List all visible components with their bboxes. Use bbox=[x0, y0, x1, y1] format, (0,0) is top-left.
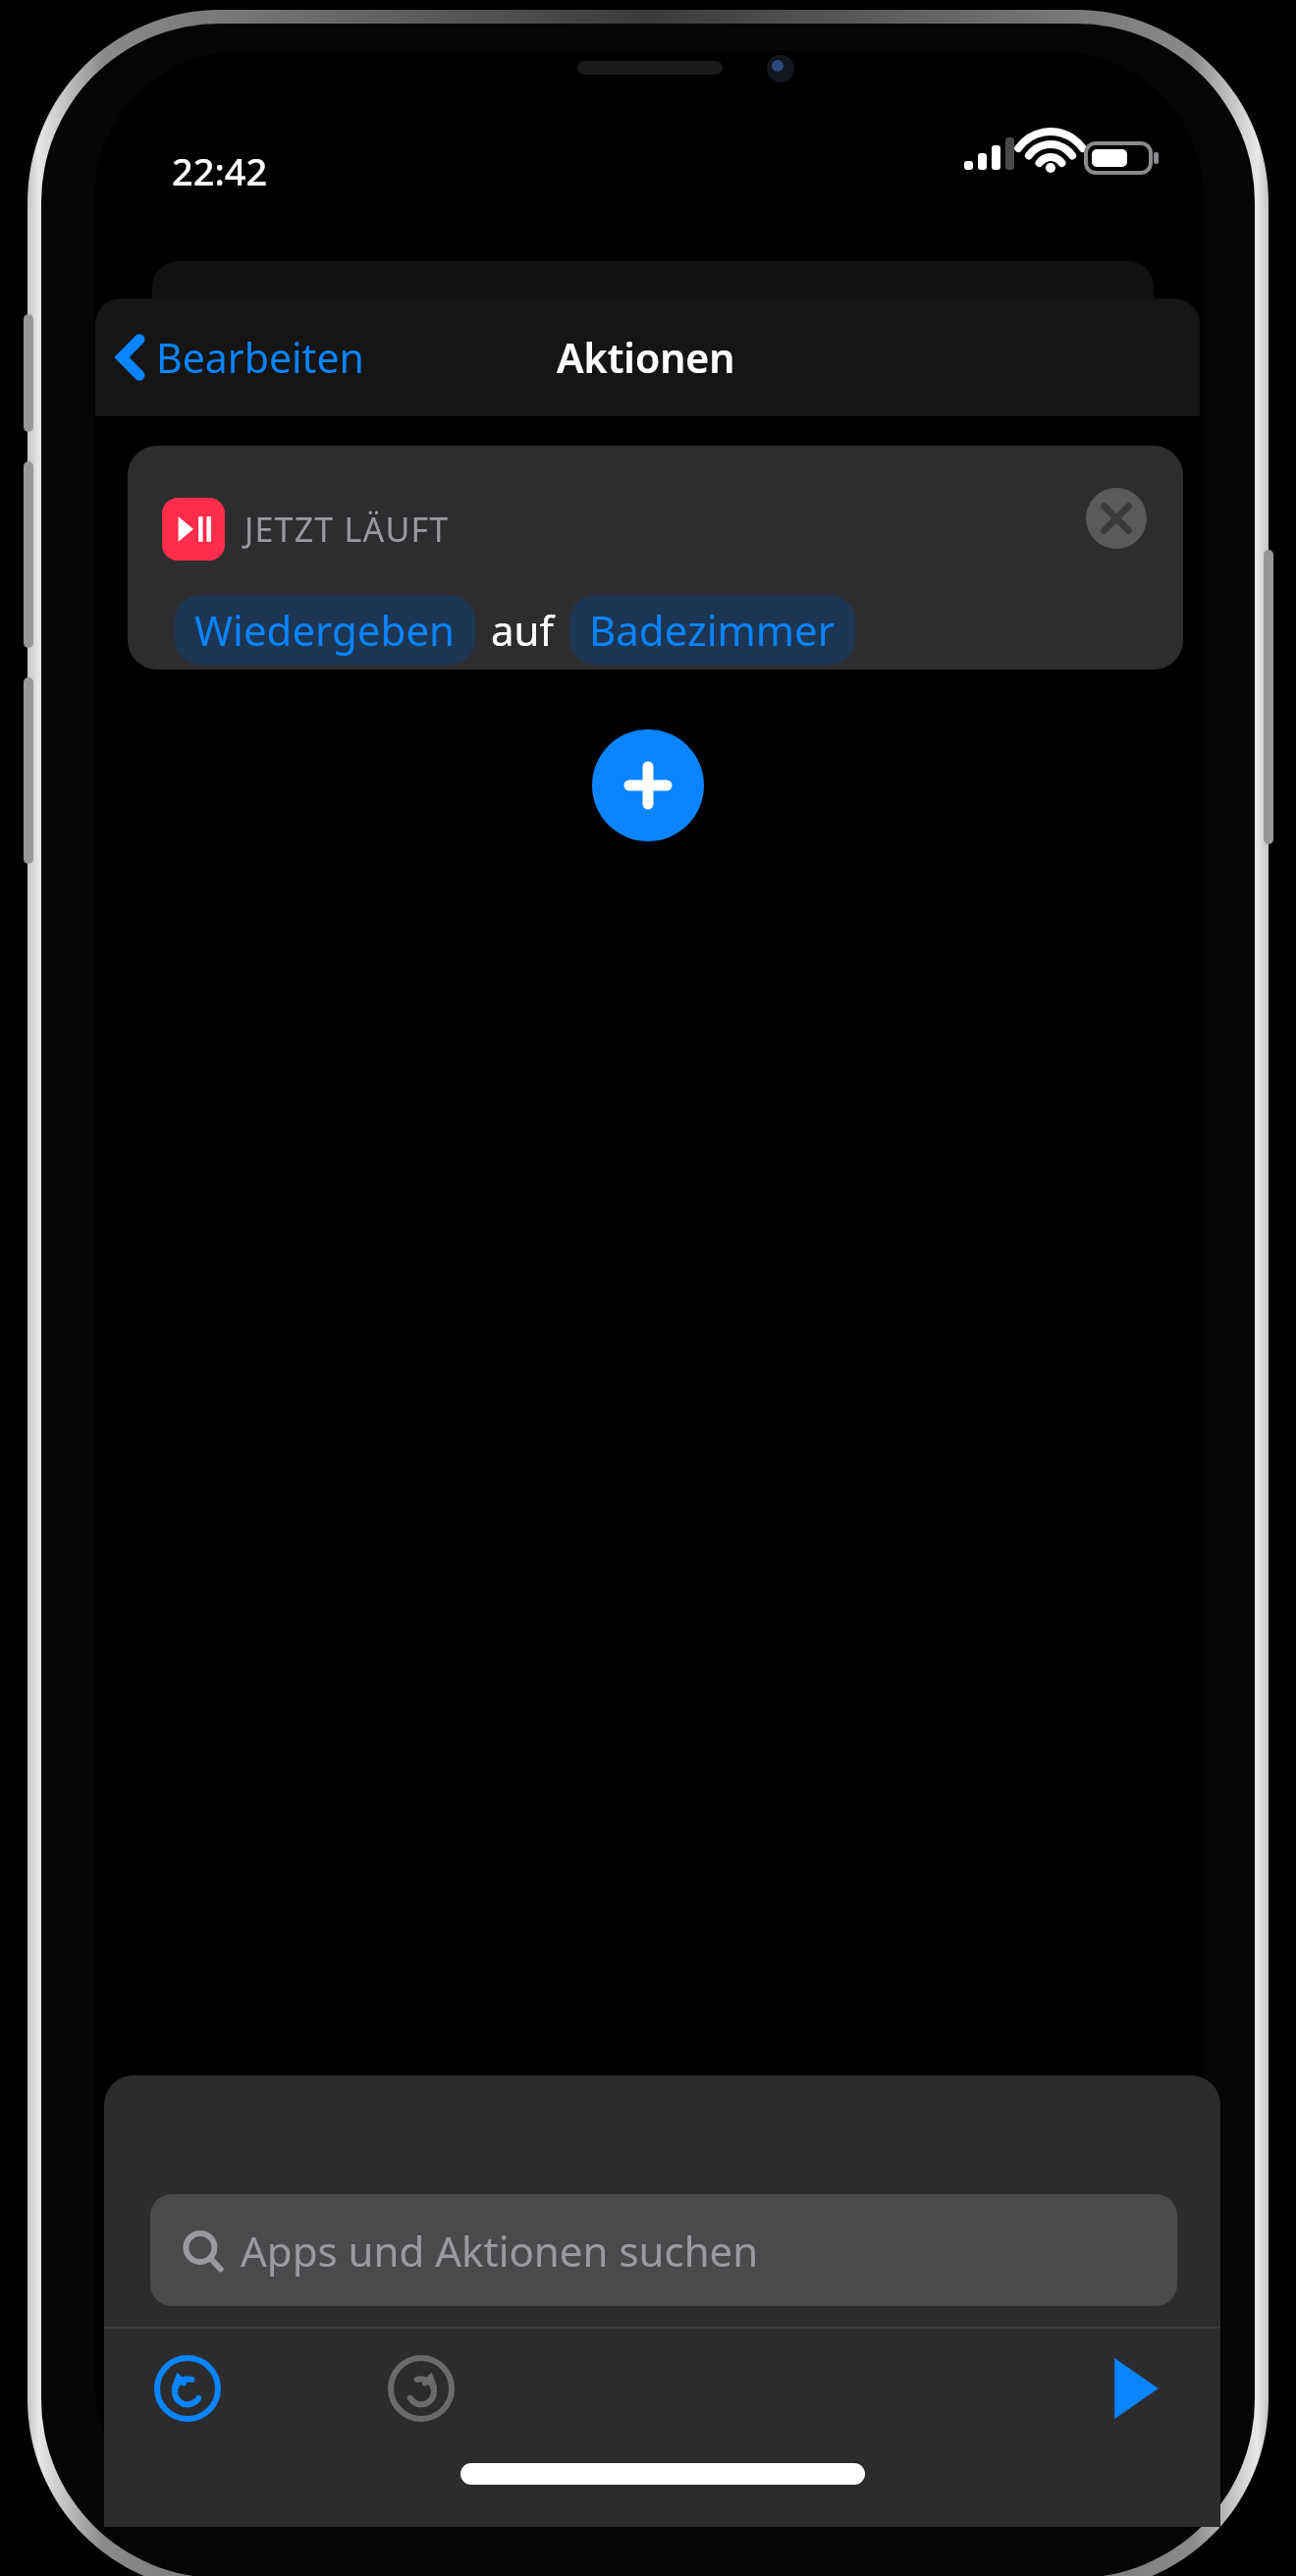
button[interactable]: JETZT LÄUFT bbox=[128, 446, 1183, 670]
button[interactable]: Bearbeiten bbox=[105, 320, 376, 395]
staticText: Apps und Aktionen suchen bbox=[241, 2223, 759, 2279]
button[interactable]: Wiedergeben bbox=[175, 595, 475, 665]
button[interactable]: Badezimmer bbox=[569, 595, 855, 665]
staticText: Wiedergeben bbox=[194, 602, 456, 658]
staticText: Aktionen bbox=[557, 330, 735, 385]
button[interactable]: Widerrufen bbox=[152, 2353, 223, 2424]
button[interactable]: Ausführen bbox=[1091, 2345, 1177, 2432]
button[interactable]: Apps und Aktionen suchen bbox=[150, 2194, 1177, 2306]
staticText: auf bbox=[491, 602, 554, 658]
staticText: Badezimmer bbox=[589, 602, 836, 658]
button[interactable]: Aktion entfernen bbox=[1085, 487, 1148, 550]
staticText: 22:42 bbox=[172, 145, 268, 196]
button[interactable]: Aktion hinzufügen bbox=[592, 729, 704, 841]
staticText: JETZT LÄUFT bbox=[244, 507, 450, 552]
staticText: Bearbeiten bbox=[156, 330, 364, 385]
button[interactable]: Wiederholen bbox=[386, 2353, 457, 2424]
